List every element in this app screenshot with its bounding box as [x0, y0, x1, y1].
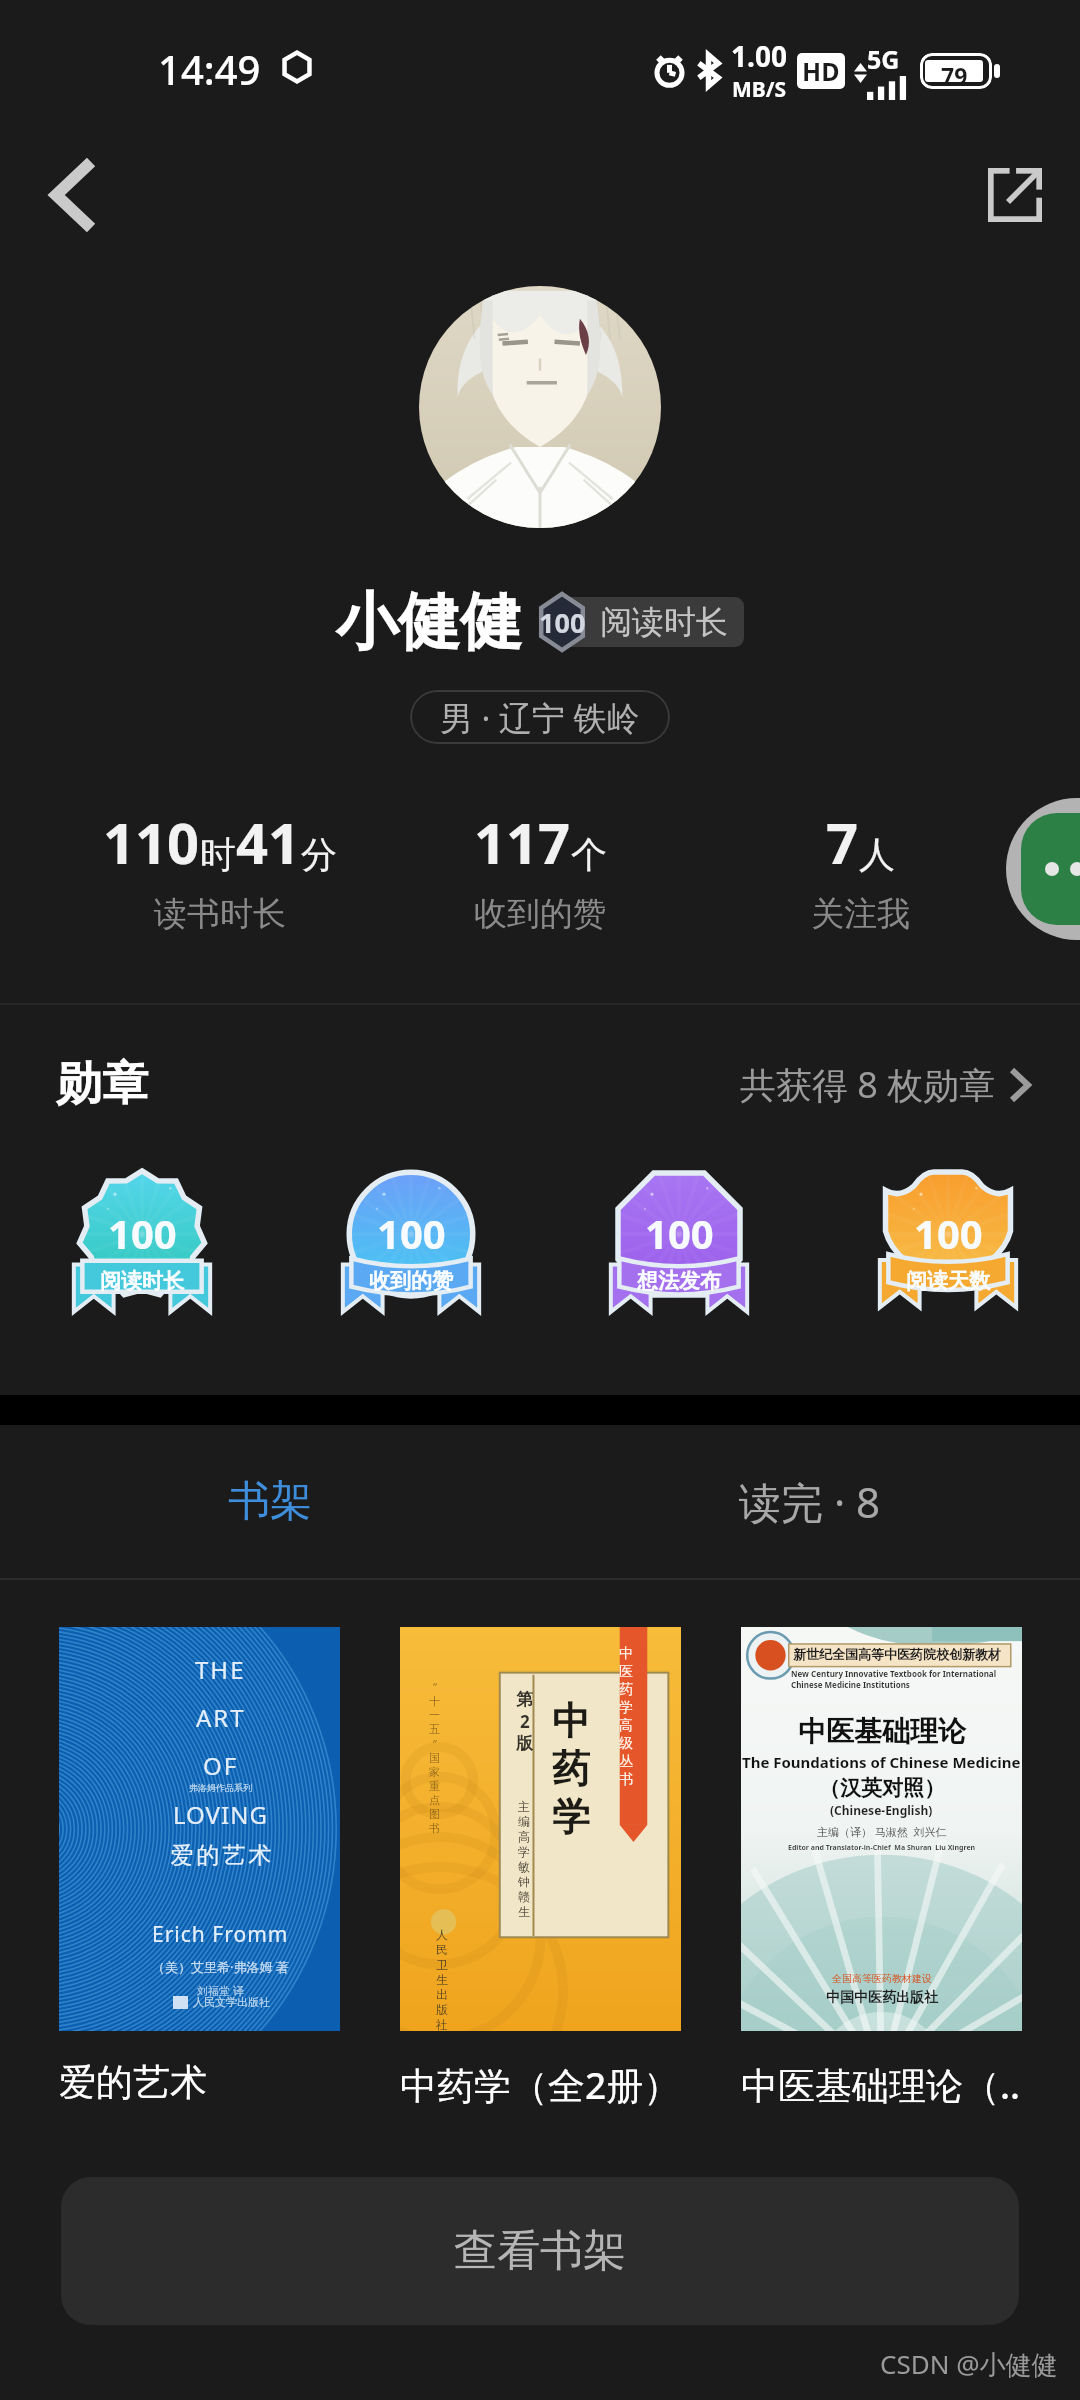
staticText: 书 — [619, 1771, 633, 1789]
staticText: 收到的赞 — [474, 893, 606, 935]
button[interactable]: 阅读时长 — [536, 592, 744, 652]
staticText: （美）艾里希·弗洛姆 著 — [152, 1958, 289, 1976]
staticText: THE — [195, 1653, 246, 1686]
staticText: 中医基础理论（… — [741, 2059, 1022, 2110]
staticText: CSDN @小健健 — [880, 2346, 1058, 2382]
staticText: 出 — [436, 1987, 448, 2002]
button[interactable]: THE — [59, 1627, 340, 2106]
staticText: 主 — [518, 1799, 530, 1814]
staticText: 图 — [429, 1807, 440, 1821]
button[interactable]: 新世纪全国高等中医药院校创新教材 — [741, 1627, 1022, 2110]
staticText: 十 — [429, 1694, 440, 1708]
staticText: 100 — [539, 604, 586, 641]
staticText: 级 — [619, 1735, 633, 1753]
staticText: 民 — [436, 1942, 448, 1957]
button[interactable]: “ — [400, 1627, 681, 2110]
staticText: 阅读时长 — [600, 602, 728, 642]
staticText: ART — [196, 1701, 246, 1734]
staticText: The Foundations of Chinese Medicine — [742, 1752, 1021, 1772]
staticText: 学 — [552, 1793, 590, 1841]
button[interactable]: 7 — [700, 804, 1020, 935]
staticText: OF — [203, 1749, 239, 1782]
staticText: 新世纪全国高等中医药院校创新教材 — [793, 1646, 1001, 1662]
staticText: 全国高等医药教材建设 — [832, 1972, 932, 1985]
staticText: 医 — [619, 1663, 633, 1681]
staticText: 读完 · 8 — [739, 1473, 881, 1530]
staticText: 敏 — [518, 1859, 530, 1874]
staticText: 生 — [518, 1904, 530, 1919]
staticText: 一 — [429, 1708, 440, 1722]
button[interactable]: Back — [30, 152, 116, 238]
staticText: Chinese Medicine Institutions — [791, 1679, 910, 1690]
button[interactable]: 100 — [608, 1169, 750, 1317]
staticText: 书 — [429, 1821, 440, 1835]
button[interactable]: 100 — [877, 1169, 1019, 1317]
staticText: Erich Fromm — [152, 1920, 289, 1949]
staticText: 人 — [436, 1927, 448, 1942]
staticText: 重 — [429, 1779, 440, 1793]
staticText: 7 — [826, 804, 859, 880]
button[interactable]: 读完 · 8 — [540, 1425, 1080, 1578]
button[interactable]: 书架 — [0, 1425, 540, 1578]
staticText: LOVING — [173, 1798, 268, 1831]
staticText: 41 — [236, 804, 301, 880]
staticText: 药 — [552, 1745, 590, 1793]
staticText: 2 — [520, 1710, 530, 1733]
staticText: 男 · 辽宁 铁岭 — [440, 695, 640, 740]
button[interactable]: 共获得 8 枚勋章 — [740, 1060, 1030, 1109]
staticText: 爱的艺术 — [59, 2059, 207, 2106]
staticText: 学 — [619, 1699, 633, 1717]
button[interactable]: 100 — [71, 1169, 213, 1317]
staticText: （汉英对照） — [819, 1775, 945, 1801]
staticText: 查看书架 — [454, 2224, 626, 2278]
staticText: 书架 — [228, 1475, 312, 1528]
staticText: 编 — [518, 1814, 530, 1829]
button[interactable]: More options — [1006, 798, 1080, 940]
staticText: 赣 — [518, 1889, 530, 1904]
staticText: 高 — [619, 1717, 633, 1735]
staticText: 刘福堂 译 — [197, 1983, 244, 1998]
staticText: 14:49 — [158, 42, 261, 96]
staticText: 100 — [377, 1206, 446, 1260]
staticText: New Century Innovative Textbook for Inte… — [791, 1668, 1022, 1679]
staticText: 卫 — [436, 1957, 448, 1972]
staticText: 五 — [429, 1722, 440, 1736]
staticText: 勋章 — [56, 1055, 148, 1113]
staticText: 国 — [429, 1751, 440, 1765]
staticText: 学 — [518, 1844, 530, 1859]
staticText: 想法发布 — [637, 1268, 721, 1294]
button[interactable]: 110 — [60, 804, 380, 935]
button[interactable]: 100 — [340, 1169, 482, 1317]
staticText: 版 — [516, 1733, 533, 1754]
button[interactable]: 查看书架 — [61, 2177, 1019, 2325]
staticText: 爱的艺术 — [169, 1841, 273, 1870]
staticText: 弗洛姆作品系列 — [189, 1782, 252, 1793]
staticText: 阅读时长 — [100, 1268, 184, 1294]
staticText: (Chinese-English) — [830, 1802, 933, 1818]
staticText: HD — [802, 54, 840, 88]
staticText: 中 — [619, 1645, 633, 1663]
staticText: 收到的赞 — [369, 1268, 453, 1294]
staticText: 时 — [200, 832, 236, 877]
button[interactable]: 男 · 辽宁 铁岭 — [410, 690, 670, 744]
staticText: 110 — [103, 804, 200, 880]
staticText: 社 — [436, 2017, 448, 2031]
button[interactable]: Share — [972, 152, 1058, 238]
staticText: MB/S — [732, 75, 787, 104]
staticText: 共获得 8 枚勋章 — [740, 1060, 996, 1109]
staticText: 1.00 — [731, 37, 787, 75]
staticText: 100 — [645, 1206, 714, 1260]
staticText: 117 — [474, 804, 571, 880]
staticText: 关注我 — [811, 893, 910, 935]
staticText: 79 — [941, 60, 968, 82]
staticText: 人民文学出版社 — [193, 1995, 270, 2009]
staticText: 钟 — [518, 1874, 530, 1889]
staticText: Editor and Translator-in-Chief Ma Shuran… — [788, 1843, 976, 1853]
staticText: 中国中医药出版社 — [826, 1989, 938, 2007]
staticText: 中医基础理论 — [798, 1714, 966, 1749]
staticText: 中 — [552, 1697, 590, 1745]
staticText: 100 — [914, 1206, 983, 1260]
button[interactable]: 117 — [380, 804, 700, 935]
staticText: 丛 — [619, 1753, 633, 1771]
staticText: 家 — [429, 1765, 440, 1779]
